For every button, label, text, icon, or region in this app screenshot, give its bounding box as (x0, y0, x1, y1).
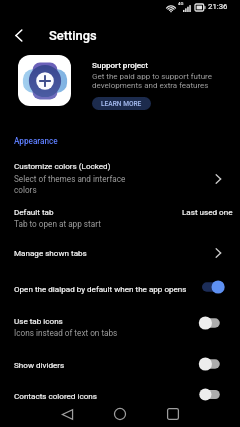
staticText: Settings (49, 28, 97, 43)
staticText: Select of themes and interface colors (14, 174, 126, 195)
button[interactable]: Contacts colored icons (0, 388, 240, 401)
staticText: Last used one (182, 207, 233, 216)
staticText: Icons instead of text on tabs (14, 328, 118, 338)
staticText: Appearance (14, 136, 58, 146)
button[interactable]: App icon (18, 55, 71, 106)
staticText: 4G (178, 1, 184, 6)
staticText: Support project (92, 60, 149, 69)
button[interactable]: Back (49, 401, 85, 427)
staticText: Open the dialpad by default when the app… (14, 284, 187, 293)
button[interactable]: Home (102, 401, 138, 427)
button[interactable]: Show dividers (0, 354, 240, 380)
button[interactable]: Use tab icons (0, 310, 240, 342)
button[interactable]: Recent apps (155, 401, 191, 427)
staticText: Use tab icons (14, 316, 63, 325)
button[interactable]: Customize colors (Locked) (0, 156, 240, 198)
staticText: Tab to open at app start (14, 219, 101, 229)
staticText: Manage shown tabs (14, 248, 87, 257)
staticText: Contacts colored icons (14, 391, 97, 400)
button[interactable]: Manage shown tabs (0, 240, 240, 268)
button[interactable]: Open the dialpad by default when the app… (0, 276, 240, 304)
button[interactable]: Back (6, 22, 32, 48)
staticText: 21:36 (208, 2, 228, 11)
staticText: Get the paid app to support future devel… (92, 72, 212, 90)
staticText: Default tab (14, 207, 54, 216)
button[interactable]: LEARN MORE (92, 97, 151, 110)
staticText: Customize colors (Locked) (14, 161, 111, 170)
button[interactable]: Default tab (0, 203, 240, 235)
staticText: Show dividers (14, 360, 65, 369)
staticText: LEARN MORE (101, 100, 142, 108)
